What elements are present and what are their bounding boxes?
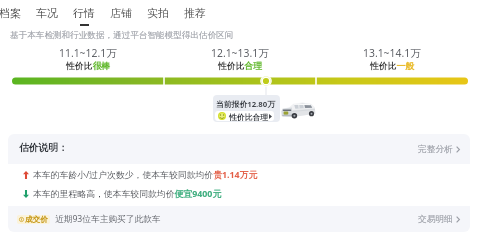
staticText: 基于本车检测和行业数据，通过平台智能模型得出估价区间: [10, 30, 234, 41]
staticText: 估价说明：: [19, 142, 68, 154]
button[interactable]: 完整分析: [418, 140, 460, 158]
staticText: 成交价: [25, 215, 48, 224]
button[interactable]: 档案: [0, 0, 21, 26]
button[interactable]: 行情: [72, 0, 95, 26]
staticText: 店铺: [110, 6, 132, 20]
other: More: [456, 216, 460, 223]
other: More: [456, 146, 460, 153]
staticText: 完整分析: [418, 144, 453, 155]
staticText: 性价比合理: [229, 112, 268, 121]
button[interactable]: 推荐: [183, 0, 206, 26]
staticText: 近期93位车主购买了此款车: [55, 213, 161, 225]
button[interactable]: 当前报价12.80万: [213, 95, 280, 122]
staticText: 行情: [73, 6, 95, 20]
staticText: 本车的车龄小/过户次数少，使本车较同款均价贵1.14万元: [33, 169, 258, 181]
button[interactable]: 实拍: [146, 0, 169, 26]
button[interactable]: 成交价: [17, 212, 161, 226]
staticText: 性价比很棒: [66, 61, 110, 72]
staticText: 11.1~12.1万: [59, 46, 117, 60]
staticText: 当前报价12.80万: [216, 99, 276, 110]
staticText: 13.1~14.1万: [363, 46, 421, 60]
staticText: 档案: [0, 6, 21, 20]
button[interactable]: 交易明细: [418, 210, 460, 228]
staticText: 性价比合理: [218, 61, 262, 72]
button[interactable]: 店铺: [109, 0, 132, 26]
staticText: 实拍: [147, 6, 169, 20]
staticText: 交易明细: [418, 214, 453, 225]
staticText: 本车的里程略高，使本车较同款均价便宜9400元: [33, 188, 222, 200]
staticText: 车况: [36, 6, 58, 20]
button[interactable]: 车况: [35, 0, 58, 26]
staticText: 性价比一般: [370, 61, 414, 72]
staticText: 推荐: [184, 6, 206, 20]
staticText: 12.1~13.1万: [211, 46, 269, 60]
